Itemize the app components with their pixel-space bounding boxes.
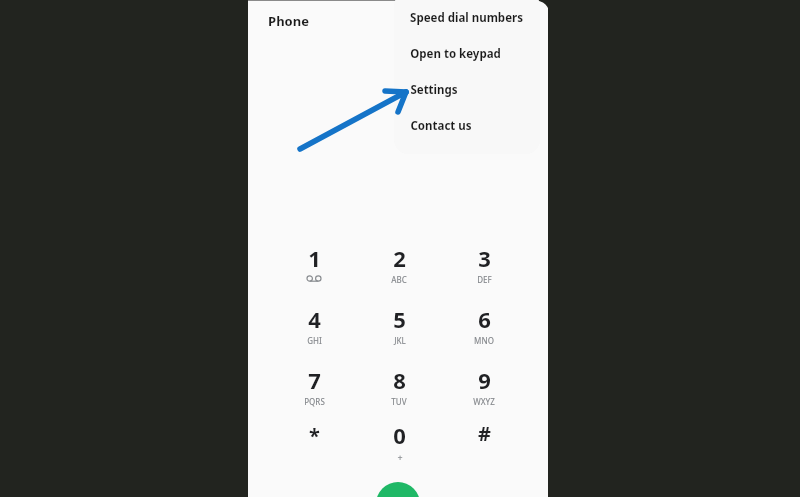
staticText: * xyxy=(309,422,320,449)
staticText: 6 xyxy=(478,304,491,334)
button[interactable]: * xyxy=(286,420,342,466)
button[interactable]: 5 xyxy=(371,304,427,350)
staticText: 2 xyxy=(393,243,406,273)
staticText: # xyxy=(478,420,491,447)
staticText: Speed dial numbers xyxy=(410,10,523,26)
button[interactable]: 9 xyxy=(456,365,512,411)
staticText: DEF xyxy=(477,274,492,285)
staticText: 1 xyxy=(308,243,321,273)
button[interactable]: # xyxy=(456,420,512,466)
button[interactable]: 7 xyxy=(286,365,342,411)
button[interactable]: Call xyxy=(376,482,420,497)
staticText: 7 xyxy=(308,365,321,395)
staticText: GHI xyxy=(307,335,322,346)
staticText: PQRS xyxy=(304,396,325,407)
button[interactable]: 0 xyxy=(371,420,427,466)
staticText: JKL xyxy=(394,335,406,346)
button[interactable]: Speed dial numbers xyxy=(394,0,540,36)
staticText: + xyxy=(397,451,403,463)
staticText: Phone xyxy=(268,12,309,30)
staticText: 3 xyxy=(478,243,491,273)
button[interactable]: 2 xyxy=(371,243,427,289)
button[interactable]: Open to keypad xyxy=(394,36,540,72)
button[interactable]: 3 xyxy=(456,243,512,289)
staticText: 5 xyxy=(393,304,406,334)
button[interactable]: 6 xyxy=(456,304,512,350)
staticText: Open to keypad xyxy=(410,46,501,62)
button[interactable]: 1 xyxy=(286,243,342,289)
staticText: MNO xyxy=(474,335,494,346)
staticText: WXYZ xyxy=(473,396,495,407)
button[interactable]: 4 xyxy=(286,304,342,350)
staticText: 8 xyxy=(393,365,406,395)
staticText: 0 xyxy=(393,420,406,450)
staticText: 9 xyxy=(478,365,491,395)
staticText: 4 xyxy=(308,304,321,334)
staticText: Contact us xyxy=(410,118,472,134)
staticText: ABC xyxy=(391,274,407,285)
staticText: TUV xyxy=(391,396,407,407)
button[interactable]: Contact us xyxy=(394,108,540,144)
staticText: Settings xyxy=(410,82,458,98)
button[interactable]: 8 xyxy=(371,365,427,411)
button[interactable]: Settings xyxy=(394,72,540,108)
